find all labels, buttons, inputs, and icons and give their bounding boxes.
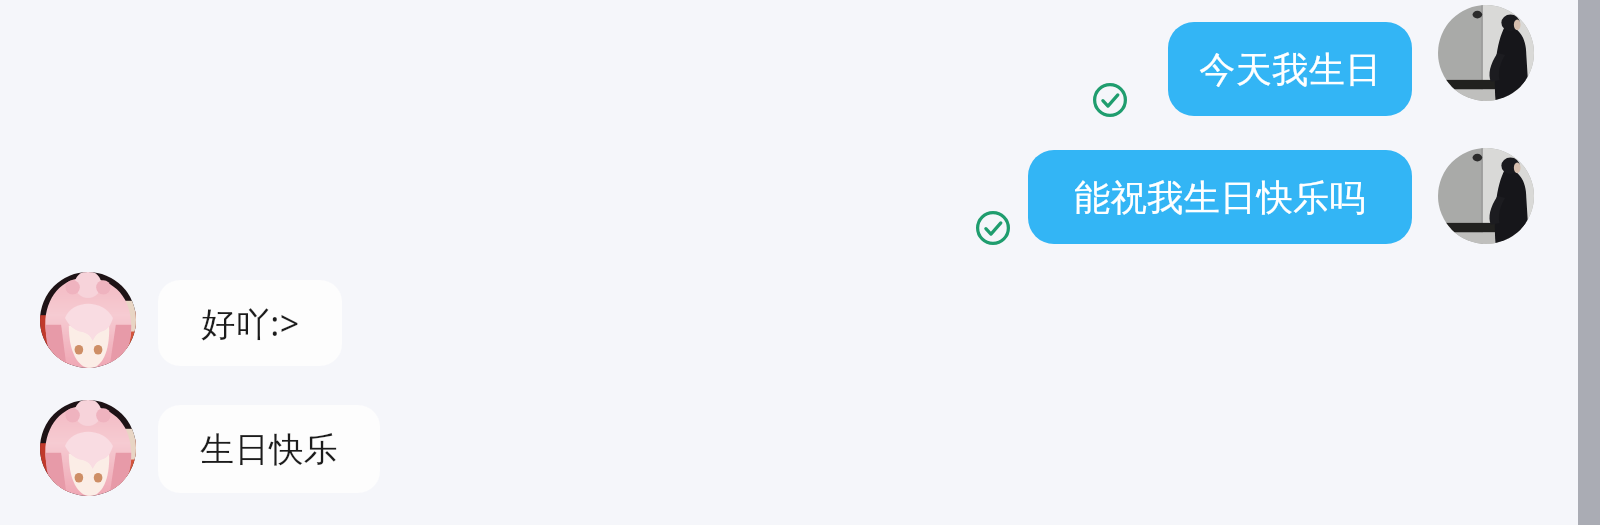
staticText: 今天我生日 <box>1199 47 1382 92</box>
button[interactable]: 生日快乐 <box>158 405 380 493</box>
button[interactable]: Message delivered <box>976 211 1010 245</box>
staticText: 能祝我生日快乐吗 <box>1074 175 1366 220</box>
button[interactable]: Friend avatar <box>40 272 136 368</box>
button[interactable]: My avatar <box>1438 148 1534 244</box>
button[interactable]: My avatar <box>1438 5 1534 101</box>
button[interactable]: Message delivered <box>1093 83 1127 117</box>
staticText: 生日快乐 <box>200 428 338 471</box>
button[interactable]: Friend avatar <box>40 400 136 496</box>
staticText: 好吖:> <box>201 300 300 346</box>
button[interactable]: 今天我生日 <box>1168 22 1412 116</box>
button[interactable]: 能祝我生日快乐吗 <box>1028 150 1412 244</box>
button[interactable]: 好吖:> <box>158 280 342 366</box>
